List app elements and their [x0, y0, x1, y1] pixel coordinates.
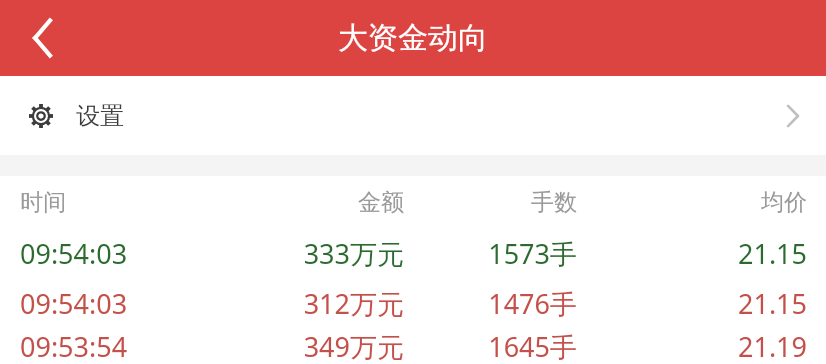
staticText: 21.19 — [577, 328, 807, 364]
button[interactable]: Back — [0, 0, 86, 76]
button[interactable]: 设置 — [0, 76, 826, 155]
button[interactable]: 09:53:54 — [0, 328, 826, 364]
button[interactable]: 09:54:03 — [0, 228, 826, 278]
staticText: 21.15 — [577, 285, 807, 322]
staticText: 09:53:54 — [20, 328, 212, 364]
staticText: 312万元 — [212, 285, 404, 322]
staticText: 金额 — [212, 188, 404, 217]
staticText: 09:54:03 — [20, 285, 212, 322]
button[interactable]: 09:54:03 — [0, 278, 826, 328]
staticText: 1573手 — [404, 235, 577, 272]
staticText: 时间 — [20, 188, 212, 217]
staticText: 1476手 — [404, 285, 577, 322]
staticText: 349万元 — [212, 328, 404, 364]
staticText: 大资金动向 — [338, 19, 488, 57]
staticText: 手数 — [404, 188, 577, 217]
staticText: 设置 — [76, 101, 124, 131]
staticText: 333万元 — [212, 235, 404, 272]
staticText: 21.15 — [577, 235, 807, 272]
staticText: 09:54:03 — [20, 235, 212, 272]
staticText: 1645手 — [404, 328, 577, 364]
staticText: 均价 — [577, 188, 807, 217]
